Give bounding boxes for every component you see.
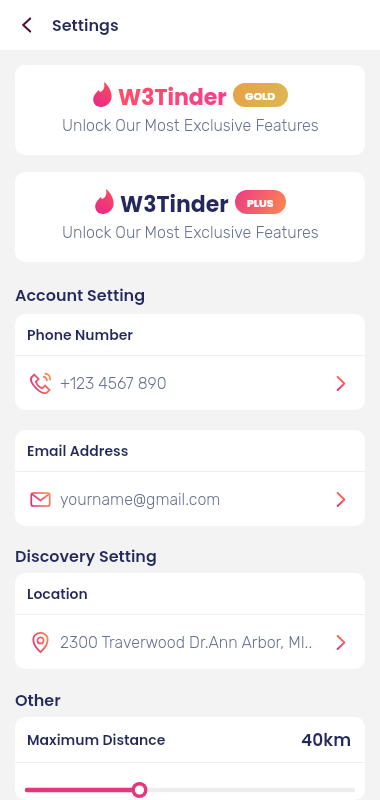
button[interactable]: W3Tinder xyxy=(15,172,365,262)
staticText: GOLD xyxy=(245,88,276,103)
button[interactable]: +123 4567 890 xyxy=(15,356,365,410)
staticText: yourname@gmail.com xyxy=(60,490,331,509)
staticText: Unlock Our Most Exclusive Features xyxy=(62,116,319,135)
staticText: W3Tinder xyxy=(120,189,229,214)
button[interactable]: Maximum distance slider xyxy=(15,763,365,800)
button[interactable]: W3Tinder xyxy=(15,65,365,155)
staticText: Maximum Distance xyxy=(27,730,301,750)
staticText: Unlock Our Most Exclusive Features xyxy=(62,223,319,242)
staticText: Discovery Setting xyxy=(15,545,157,567)
staticText: Settings xyxy=(52,14,119,36)
staticText: Location xyxy=(27,584,88,604)
button[interactable]: 2300 Traverwood Dr.Ann Arbor, MI.. xyxy=(15,615,365,669)
staticText: +123 4567 890 xyxy=(60,374,331,393)
staticText: Email Address xyxy=(27,441,129,461)
button[interactable]: Back xyxy=(14,12,40,38)
staticText: 2300 Traverwood Dr.Ann Arbor, MI.. xyxy=(60,633,331,652)
staticText: PLUS xyxy=(247,195,274,210)
staticText: 40km xyxy=(301,728,351,752)
staticText: Account Setting xyxy=(15,284,146,306)
staticText: W3Tinder xyxy=(118,82,227,107)
staticText: Other xyxy=(15,689,61,711)
button[interactable]: yourname@gmail.com xyxy=(15,472,365,526)
staticText: Phone Number xyxy=(27,325,133,345)
